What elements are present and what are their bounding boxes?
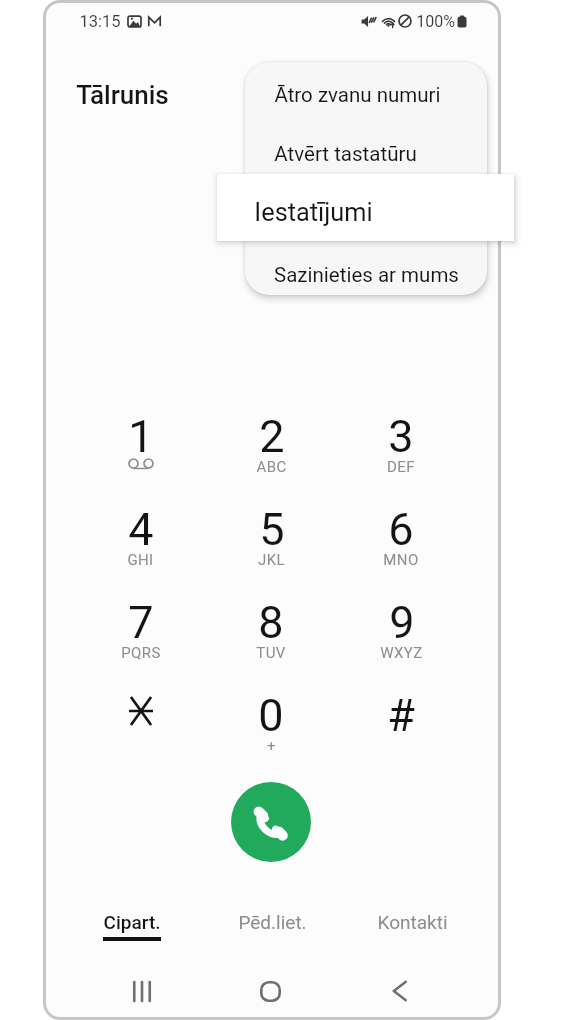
staticText: Tālrunis (76, 80, 169, 110)
staticText: Pēd.liet. (238, 911, 307, 933)
button[interactable]: 5 (206, 503, 336, 596)
button[interactable]: 1 (75, 410, 206, 503)
button[interactable]: 8 (206, 596, 336, 689)
staticText: TUV (256, 644, 286, 662)
button[interactable]: 2 (206, 410, 336, 503)
button[interactable]: Home (206, 974, 335, 1006)
staticText: 8 (258, 596, 284, 649)
staticText: DEF (387, 458, 415, 476)
button[interactable]: Iestatījumi (217, 174, 514, 241)
staticText: Sazinieties ar mums (274, 263, 459, 287)
button[interactable]: Kontakti (342, 911, 482, 947)
button[interactable]: 6 (336, 503, 466, 596)
button[interactable]: Back (335, 974, 464, 1006)
staticText: Atvērt tastatūru (274, 142, 417, 166)
staticText: 7 (128, 596, 154, 649)
button[interactable]: 7 (75, 596, 206, 689)
button[interactable]: Recent apps (77, 974, 206, 1006)
button[interactable] (245, 187, 487, 236)
staticText: MNO (383, 551, 419, 569)
button[interactable]: 3 (336, 410, 466, 503)
button[interactable]: Ātro zvanu numuri (245, 70, 487, 119)
button[interactable]: 4 (75, 503, 206, 596)
button[interactable]: # (336, 689, 466, 781)
staticText: Cipart. (103, 911, 161, 933)
button[interactable]: 0 (206, 689, 336, 781)
staticText: PQRS (121, 644, 161, 662)
staticText: 1 (128, 410, 154, 463)
button[interactable]: 9 (336, 596, 466, 689)
button[interactable]: Cipart. (62, 911, 202, 947)
staticText: Ātro zvanu numuri (274, 83, 441, 107)
staticText: + (267, 737, 276, 755)
staticText: Iestatījumi (254, 198, 373, 228)
button[interactable]: Atvērt tastatūru (245, 129, 487, 178)
staticText: # (387, 689, 415, 742)
staticText: GHI (127, 551, 154, 569)
staticText: 3 (388, 410, 414, 463)
staticText: 6 (388, 503, 414, 556)
staticText: JKL (258, 551, 285, 569)
button[interactable] (75, 689, 206, 781)
button[interactable]: Sazinieties ar mums (245, 250, 487, 295)
staticText: 100% (416, 12, 455, 31)
staticText: ABC (256, 458, 287, 476)
staticText: Kontakti (377, 911, 448, 933)
staticText: 4 (128, 503, 154, 556)
staticText: 2 (259, 410, 285, 463)
staticText: 9 (389, 596, 415, 649)
staticText: 0 (258, 689, 284, 742)
staticText: 5 (259, 503, 285, 556)
button[interactable]: Call (231, 782, 311, 862)
staticText: 13:15 (79, 12, 121, 31)
staticText: WXYZ (380, 644, 423, 662)
button[interactable]: Pēd.liet. (202, 911, 342, 947)
